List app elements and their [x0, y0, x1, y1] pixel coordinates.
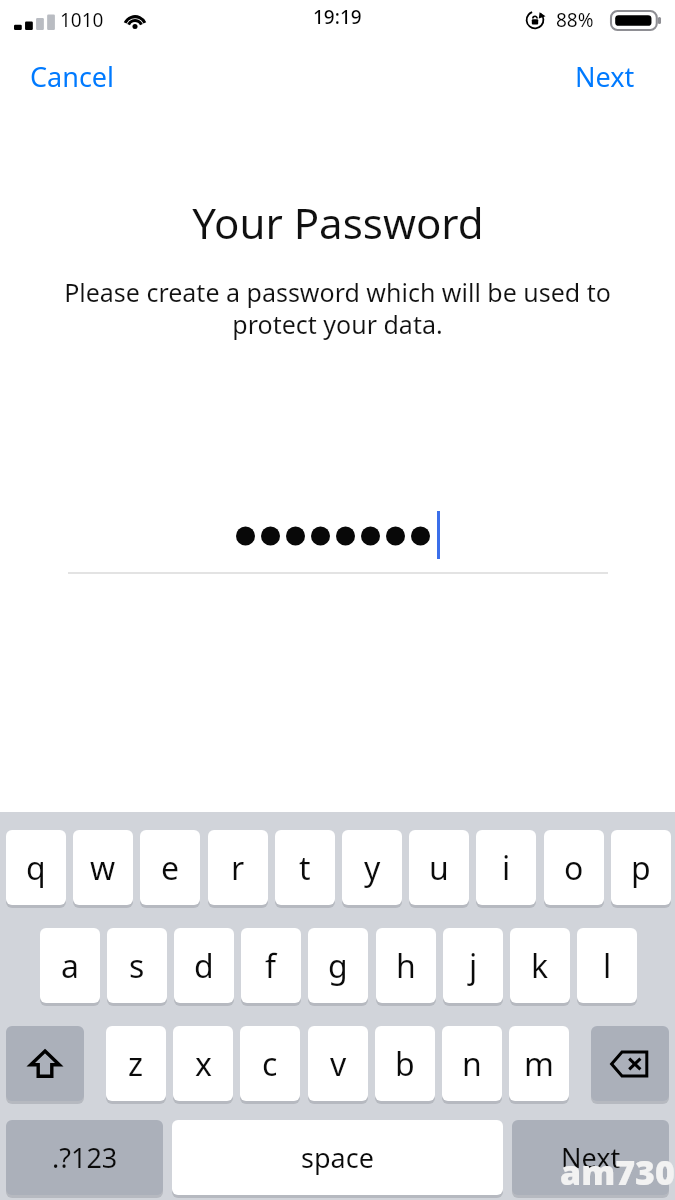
staticText: r — [231, 846, 245, 890]
staticText: x — [195, 1042, 212, 1086]
staticText: 19:19 — [313, 4, 362, 30]
staticText: Next — [561, 1139, 621, 1176]
button[interactable]: m — [509, 1026, 569, 1102]
button[interactable]: t — [275, 830, 335, 906]
staticText: k — [531, 944, 549, 988]
staticText: e — [161, 846, 180, 890]
button[interactable]: j — [443, 928, 503, 1004]
button[interactable]: e — [140, 830, 200, 906]
staticText: s — [129, 944, 145, 988]
button[interactable]: g — [308, 928, 368, 1004]
button[interactable]: y — [342, 830, 402, 906]
staticText: l — [603, 944, 612, 988]
staticText: q — [26, 846, 46, 890]
button[interactable]: Next — [565, 52, 645, 101]
staticText: n — [462, 1042, 482, 1086]
button[interactable]: n — [442, 1026, 502, 1102]
button[interactable]: q — [6, 830, 66, 906]
button[interactable]: space — [172, 1120, 503, 1196]
button[interactable]: Backspace — [591, 1026, 669, 1102]
staticText: m — [524, 1042, 554, 1086]
staticText: u — [429, 846, 449, 890]
button[interactable]: v — [308, 1026, 368, 1102]
button[interactable]: x — [173, 1026, 233, 1102]
staticText: b — [395, 1042, 415, 1086]
button[interactable]: Shift — [6, 1026, 84, 1102]
staticText: Cancel — [30, 58, 115, 95]
staticText: d — [194, 944, 214, 988]
button[interactable]: o — [544, 830, 604, 906]
staticText: h — [396, 944, 416, 988]
staticText: f — [265, 944, 277, 988]
staticText: v — [330, 1042, 347, 1086]
staticText: i — [502, 846, 511, 890]
staticText: Next — [575, 58, 635, 95]
button[interactable]: w — [73, 830, 133, 906]
button[interactable]: s — [107, 928, 167, 1004]
staticText: z — [128, 1042, 144, 1086]
staticText: .?123 — [52, 1139, 118, 1176]
staticText: space — [301, 1139, 374, 1176]
staticText: w — [90, 846, 116, 890]
staticText: j — [469, 944, 478, 988]
button[interactable]: c — [240, 1026, 300, 1102]
button[interactable]: p — [611, 830, 671, 906]
button[interactable]: r — [208, 830, 268, 906]
button[interactable]: h — [376, 928, 436, 1004]
staticText: 88% — [556, 7, 594, 33]
staticText: Your Password — [192, 194, 484, 251]
staticText: 1010 — [60, 7, 104, 33]
button[interactable]: .?123 — [6, 1120, 163, 1196]
button[interactable]: a — [40, 928, 100, 1004]
button[interactable]: l — [577, 928, 637, 1004]
staticText: c — [262, 1042, 278, 1086]
button[interactable]: b — [375, 1026, 435, 1102]
button[interactable]: i — [476, 830, 536, 906]
staticText: Please create a password which will be u… — [38, 275, 637, 341]
staticText: y — [364, 846, 381, 890]
staticText: am730 — [560, 1149, 675, 1195]
staticText: a — [61, 944, 79, 988]
button[interactable]: Cancel — [20, 52, 125, 101]
staticText: g — [328, 944, 348, 988]
staticText: t — [299, 846, 311, 890]
button[interactable]: u — [409, 830, 469, 906]
button[interactable]: f — [241, 928, 301, 1004]
button[interactable]: z — [106, 1026, 166, 1102]
button[interactable]: d — [174, 928, 234, 1004]
staticText: o — [564, 846, 584, 890]
button[interactable]: Next — [512, 1120, 669, 1196]
button[interactable]: k — [510, 928, 570, 1004]
staticText: p — [631, 846, 651, 890]
